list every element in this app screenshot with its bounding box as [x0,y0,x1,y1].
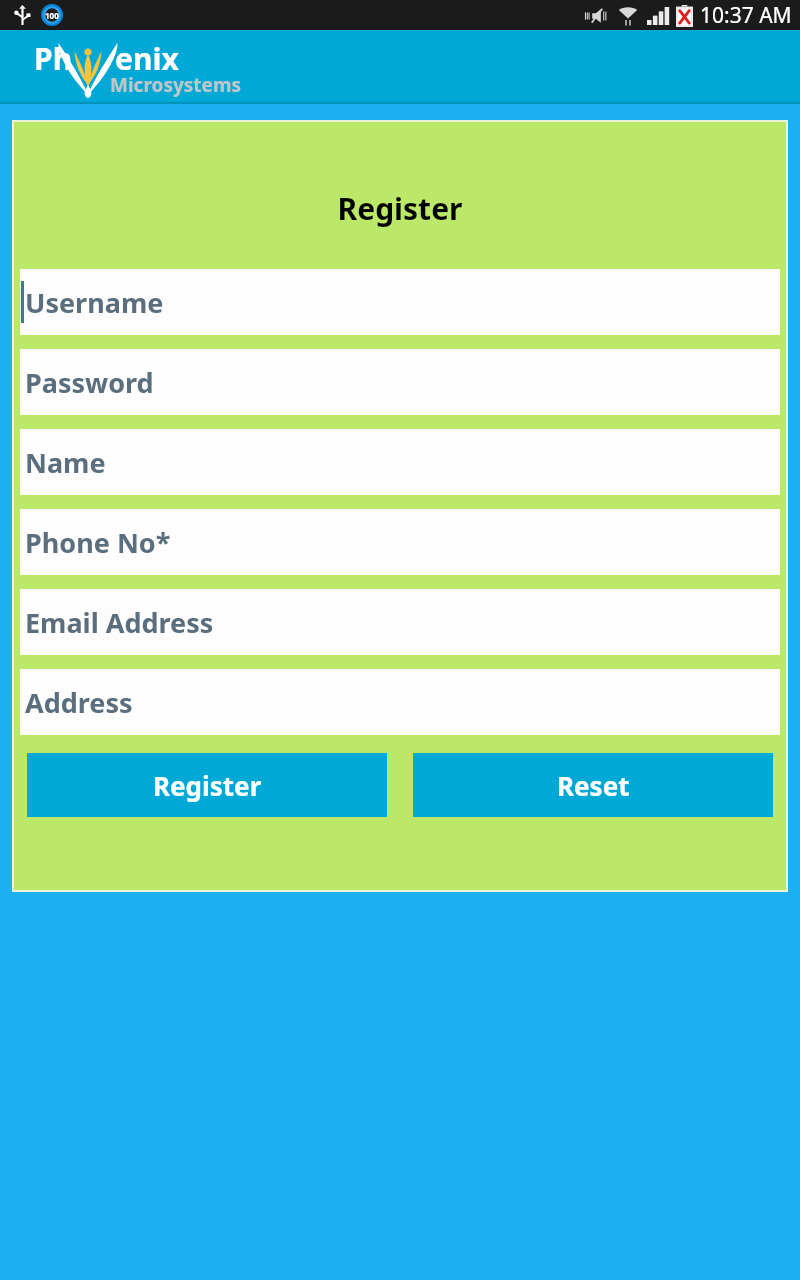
button[interactable]: Phone No* [20,509,780,575]
button[interactable]: Reset [413,753,773,817]
staticText: Register [153,768,262,803]
button[interactable]: Email Address [20,589,780,655]
staticText: Register [12,188,788,229]
staticText: Name [25,444,106,481]
button[interactable]: Address [20,669,780,735]
staticText: 10:37 AM [700,1,792,30]
staticText: enix [115,38,179,79]
staticText: Address [25,684,133,721]
button[interactable]: Username [20,269,780,335]
button[interactable]: Password [20,349,780,415]
staticText: Ph [34,38,73,79]
staticText: Phone No* [25,524,171,561]
staticText: Username [25,284,164,321]
button[interactable]: Register [27,753,387,817]
button[interactable]: Phoenix Microsystems logo [34,34,244,100]
button[interactable]: Name [20,429,780,495]
staticText: Password [25,364,154,401]
staticText: 100 [45,10,59,21]
staticText: Microsystems [110,72,241,98]
staticText: Reset [557,768,630,803]
staticText: Email Address [25,604,214,641]
